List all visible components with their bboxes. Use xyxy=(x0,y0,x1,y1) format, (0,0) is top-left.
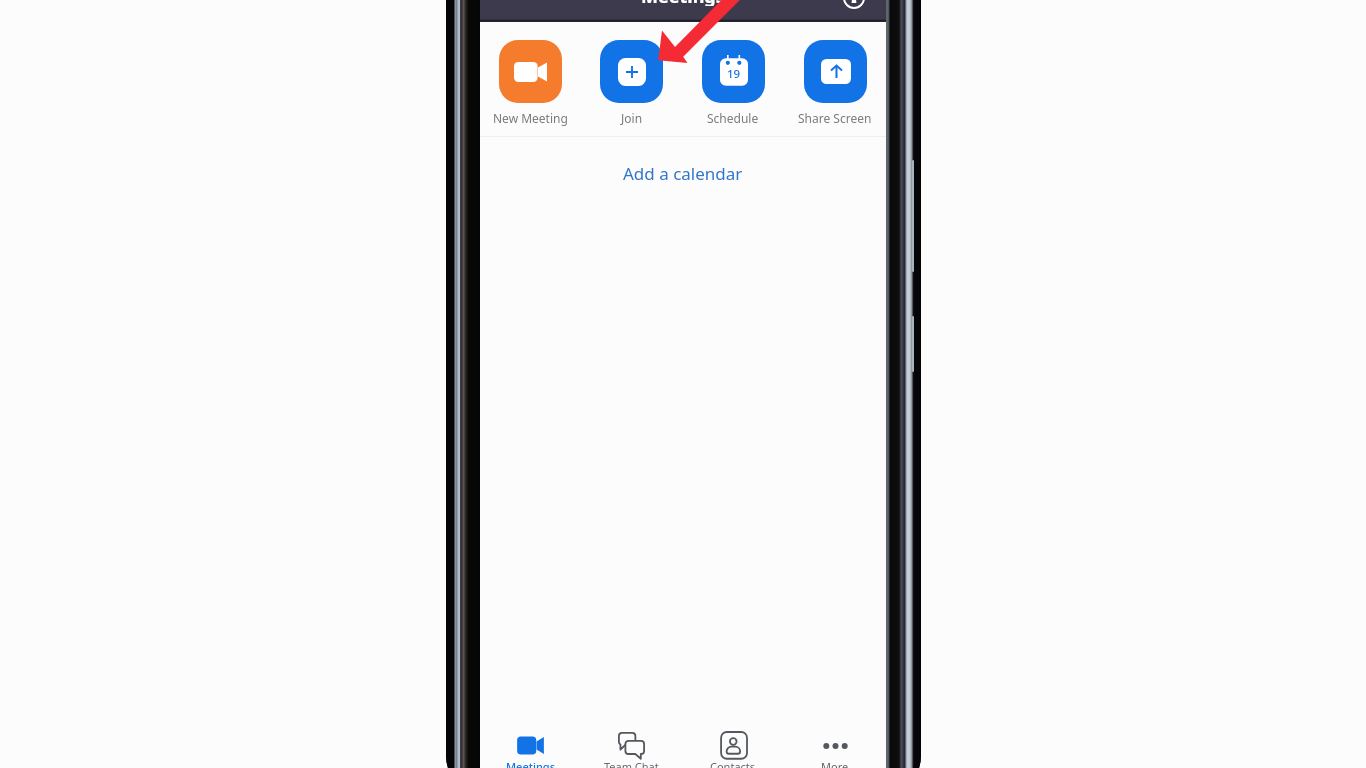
button[interactable]: Share Screen xyxy=(784,22,886,136)
button[interactable]: 19 xyxy=(682,22,784,136)
button[interactable]: More xyxy=(784,723,886,768)
staticText: 19 xyxy=(727,66,741,82)
button[interactable]: Team Chat xyxy=(581,723,682,768)
button[interactable]: Add a calendar xyxy=(480,137,886,210)
staticText: Meetings xyxy=(506,759,555,768)
button[interactable]: Profile xyxy=(843,0,865,9)
staticText: Share Screen xyxy=(798,110,872,126)
button[interactable]: Join xyxy=(581,22,682,136)
staticText: Meetings xyxy=(641,0,725,6)
staticText: More xyxy=(821,759,849,768)
button[interactable]: Meetings xyxy=(480,723,581,768)
staticText: Contacts xyxy=(710,759,756,768)
button[interactable]: Contacts xyxy=(682,723,784,768)
staticText: Schedule xyxy=(707,110,759,126)
staticText: Add a calendar xyxy=(623,162,743,185)
staticText: Team Chat xyxy=(604,759,659,768)
staticText: New Meeting xyxy=(493,110,568,126)
button[interactable]: New Meeting xyxy=(480,22,581,136)
staticText: Join xyxy=(621,110,643,126)
